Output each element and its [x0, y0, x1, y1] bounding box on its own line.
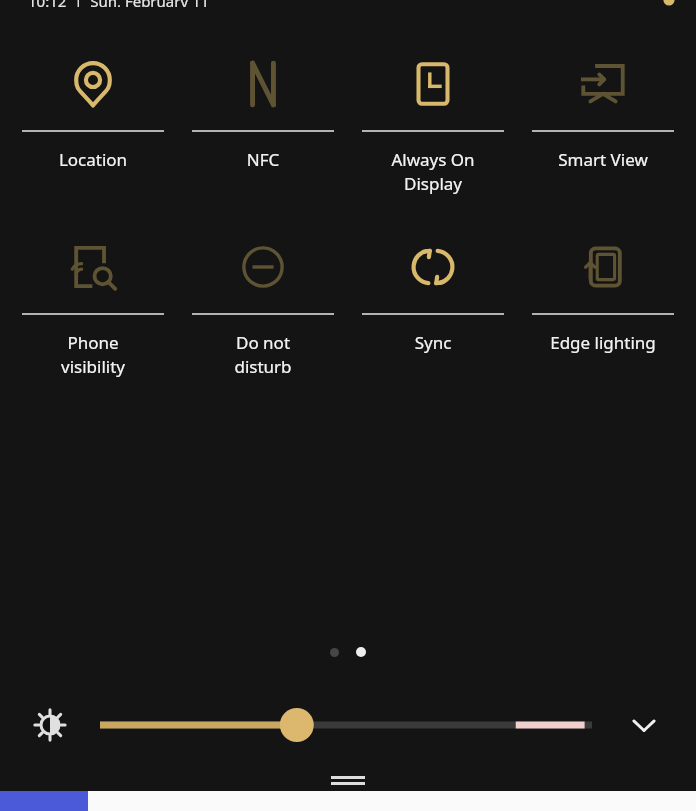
- button[interactable]: Do not disturb: [178, 221, 348, 378]
- staticText: Phone visibility: [8, 331, 178, 378]
- staticText: NFC: [178, 148, 348, 171]
- button[interactable]: NFC: [178, 38, 348, 171]
- staticText: Always On Display: [348, 148, 518, 195]
- button[interactable]: Drag handle: [0, 769, 696, 791]
- button[interactable]: Phone visibility: [8, 221, 178, 378]
- button[interactable]: Expand: [592, 697, 696, 753]
- button[interactable]: Always On Display: [348, 38, 518, 195]
- staticText: Smart View: [518, 148, 688, 171]
- button[interactable]: Auto brightness: [0, 697, 100, 753]
- staticText: Edge lighting: [518, 331, 688, 354]
- button[interactable]: Sync: [348, 221, 518, 354]
- staticText: 10:12 | Sun, February 11: [28, 0, 210, 7]
- staticText: Do not disturb: [178, 331, 348, 378]
- staticText: Location: [8, 148, 178, 171]
- button[interactable]: Smart View: [518, 38, 688, 171]
- button[interactable]: Brightness slider: [100, 697, 592, 753]
- button[interactable]: Page 1: [330, 648, 339, 657]
- button[interactable]: Edge lighting: [518, 221, 688, 354]
- button[interactable]: Location: [8, 38, 178, 171]
- button[interactable]: Page 2: [356, 647, 366, 657]
- staticText: Sync: [348, 331, 518, 354]
